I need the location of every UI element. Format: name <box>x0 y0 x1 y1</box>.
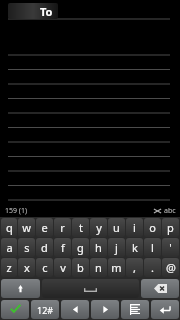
button[interactable]: l <box>144 238 161 257</box>
button[interactable]: h <box>90 238 107 257</box>
staticText: t <box>79 220 83 235</box>
button[interactable]: u <box>108 218 125 237</box>
button[interactable]: OK <box>1 300 29 319</box>
staticText: z <box>6 260 12 275</box>
button[interactable]: i <box>126 218 143 237</box>
button[interactable]: m <box>108 258 125 277</box>
staticText: d <box>41 240 48 255</box>
staticText: y <box>96 220 102 235</box>
button[interactable]: Space <box>42 279 139 298</box>
staticText: x <box>24 260 30 275</box>
button[interactable]: r <box>54 218 71 237</box>
button[interactable]: Shift <box>1 279 40 298</box>
staticText: b <box>77 260 84 275</box>
staticText: q <box>6 220 13 235</box>
staticText: e <box>41 220 48 235</box>
button[interactable]: a <box>1 238 17 257</box>
button[interactable]: @ <box>162 258 179 277</box>
staticText: @ <box>166 260 176 275</box>
button[interactable]: . <box>144 258 161 277</box>
staticText: m <box>111 260 122 275</box>
button[interactable]: n <box>90 258 107 277</box>
button[interactable]: o <box>144 218 161 237</box>
button[interactable]: e <box>36 218 53 237</box>
button[interactable]: v <box>54 258 71 277</box>
staticText: To <box>40 4 53 19</box>
button[interactable]: c <box>36 258 53 277</box>
button[interactable]: j <box>108 238 125 257</box>
staticText: i <box>133 220 136 235</box>
staticText: 12# <box>37 304 54 316</box>
staticText: k <box>132 240 138 255</box>
staticText: l <box>151 240 154 255</box>
staticText: g <box>77 240 84 255</box>
staticText: a <box>6 240 13 255</box>
staticText: u <box>113 220 120 235</box>
button[interactable]: y <box>90 218 107 237</box>
staticText: f <box>61 240 65 255</box>
button[interactable]: g <box>72 238 89 257</box>
button[interactable]: ' <box>162 238 179 257</box>
button[interactable]: x <box>18 258 35 277</box>
button[interactable]: q <box>1 218 17 237</box>
button[interactable]: Options menu <box>121 300 149 319</box>
staticText: r <box>60 220 65 235</box>
button[interactable]: Move cursor right <box>91 300 119 319</box>
button[interactable]: Enter <box>151 300 179 319</box>
staticText: abc <box>164 206 176 216</box>
button[interactable]: f <box>54 238 71 257</box>
button[interactable]: Move cursor left <box>61 300 89 319</box>
button[interactable]: Backspace <box>141 279 179 298</box>
staticText: j <box>115 240 118 255</box>
button[interactable]: t <box>72 218 89 237</box>
staticText: v <box>60 260 66 275</box>
button[interactable]: k <box>126 238 143 257</box>
button[interactable]: d <box>36 238 53 257</box>
staticText: n <box>95 260 102 275</box>
staticText: ' <box>169 240 172 255</box>
button[interactable]: p <box>162 218 179 237</box>
staticText: p <box>167 220 174 235</box>
button[interactable]: To <box>8 3 58 19</box>
staticText: . <box>151 260 154 275</box>
button[interactable]: b <box>72 258 89 277</box>
button[interactable]: w <box>18 218 35 237</box>
button[interactable]: Numbers and symbols <box>31 300 59 319</box>
button[interactable]: s <box>18 238 35 257</box>
button[interactable]: , <box>126 258 143 277</box>
staticText: 159 (1) <box>5 206 28 216</box>
staticText: , <box>133 260 136 275</box>
button[interactable]: z <box>1 258 17 277</box>
button[interactable] <box>0 24 180 205</box>
staticText: c <box>42 260 48 275</box>
staticText: w <box>22 220 31 235</box>
staticText: s <box>24 240 30 255</box>
staticText: h <box>95 240 102 255</box>
staticText: o <box>149 220 156 235</box>
